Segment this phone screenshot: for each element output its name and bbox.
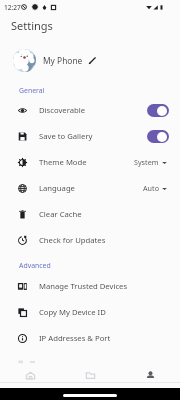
button[interactable]: Clear Cache — [0, 201, 180, 227]
staticText: My Phone — [43, 55, 83, 66]
staticText: General — [19, 86, 45, 95]
staticText: IP Addresses & Port — [39, 333, 111, 343]
staticText: Settings — [11, 18, 53, 33]
staticText: Language — [39, 183, 75, 193]
button[interactable]: Theme Mode — [0, 149, 180, 175]
staticText: System — [134, 157, 159, 167]
staticText: Auto — [143, 183, 159, 193]
button[interactable]: Manage Trusted Devices — [0, 273, 180, 299]
staticText: Copy My Device ID — [39, 307, 106, 317]
button[interactable]: Toggle — [147, 104, 169, 117]
staticText: Save to Gallery — [39, 131, 93, 141]
button[interactable]: Toggle — [147, 130, 169, 143]
button[interactable]: Copy My Device ID — [0, 299, 180, 325]
button[interactable]: Language — [0, 175, 180, 201]
button[interactable]: Save to Gallery — [0, 123, 180, 149]
staticText: Theme Mode — [39, 157, 87, 167]
button[interactable]: Files — [60, 367, 120, 383]
staticText: Clear Cache — [39, 209, 82, 219]
staticText: Manage Trusted Devices — [39, 281, 128, 291]
button[interactable]: System — [132, 154, 169, 170]
staticText: Advanced — [19, 261, 51, 270]
button[interactable]: Auto — [141, 180, 169, 196]
button[interactable]: Edit name — [88, 56, 97, 65]
button[interactable]: IP Addresses & Port — [0, 325, 180, 351]
button[interactable]: Discoverable — [0, 97, 180, 123]
button[interactable]: My Phone — [0, 47, 180, 73]
button[interactable]: Home — [0, 367, 60, 383]
staticText: Check for Updates — [39, 235, 106, 245]
button[interactable]: Profile — [120, 367, 180, 383]
staticText: 12:27 — [4, 3, 21, 12]
button[interactable]: Check for Updates — [0, 227, 180, 253]
staticText: Discoverable — [39, 105, 86, 115]
